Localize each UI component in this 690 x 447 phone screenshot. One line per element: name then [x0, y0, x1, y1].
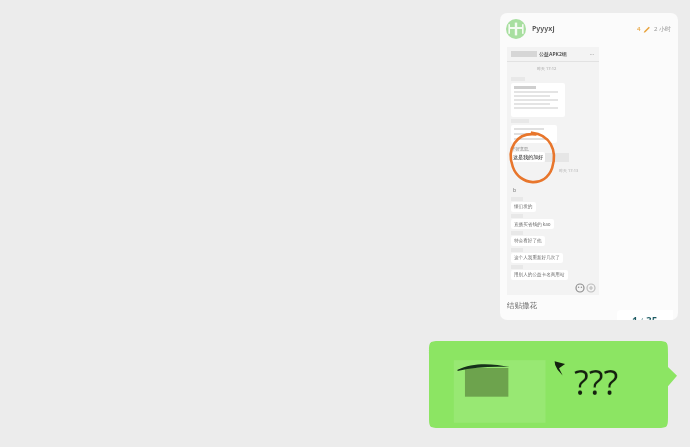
button[interactable]: ???: [429, 341, 677, 428]
staticText: 不好意思,: [512, 146, 530, 151]
staticText: b: [513, 187, 517, 194]
staticText: 直播买省钱的 kao: [514, 221, 551, 227]
staticText: 这个人我重新好几次了: [514, 255, 560, 261]
staticText: 1: [632, 314, 638, 320]
staticText: /: [638, 316, 646, 320]
staticText: 昨天 17:13: [559, 168, 579, 173]
other: Emoji: [576, 284, 584, 292]
other: Edit: [643, 26, 650, 33]
staticText: 懂们发的: [514, 204, 533, 210]
staticText: ···: [590, 51, 595, 58]
staticText: 2 小时: [654, 25, 671, 33]
staticText: 用别人的公益卡名商用站: [514, 272, 565, 278]
button[interactable]: Pyyyxj: [500, 13, 678, 320]
staticText: 35: [646, 314, 658, 320]
staticText: ???: [574, 359, 619, 405]
staticText: 昨天 17:12: [537, 66, 557, 71]
staticText: Pyyyxj: [532, 24, 555, 34]
staticText: 这是我的加好: [513, 154, 543, 160]
staticText: 结贴撒花: [507, 301, 537, 310]
staticText: 4: [637, 25, 641, 33]
button[interactable]: 1: [617, 310, 673, 320]
staticText: 特会看好了他: [514, 238, 542, 244]
staticText: 公益APK2组: [539, 51, 567, 58]
other: More: [587, 284, 595, 292]
